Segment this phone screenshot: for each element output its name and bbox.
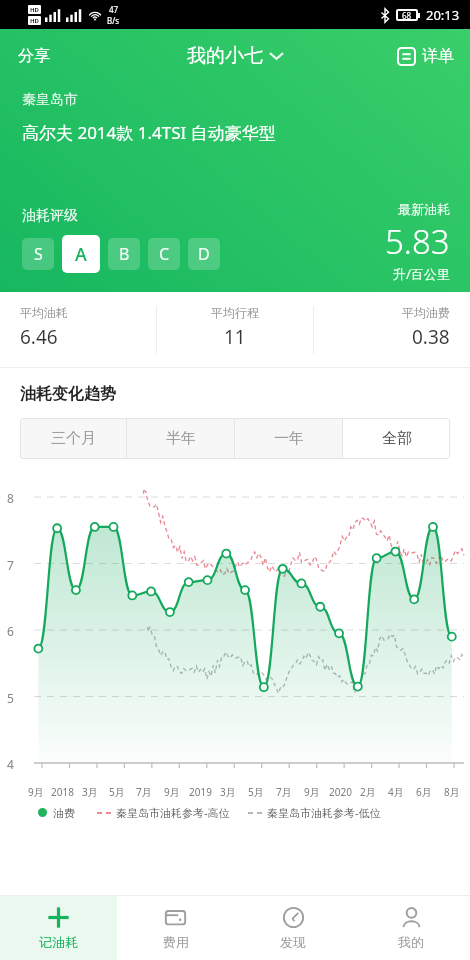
staticText: 我的小七 (187, 44, 263, 68)
staticText: 7月 (276, 785, 292, 799)
button[interactable]: 我的 (352, 896, 470, 960)
staticText: 9月 (304, 785, 320, 799)
staticText: 升/百公里 (393, 265, 450, 283)
button[interactable]: 三个月 (20, 418, 126, 459)
staticText: 发现 (280, 934, 306, 950)
staticText: 3月 (220, 785, 236, 799)
button[interactable]: 费用 (117, 896, 234, 960)
button[interactable]: 记油耗 (0, 896, 117, 960)
staticText: 平均油费 (402, 305, 450, 320)
staticText: HD (30, 17, 39, 25)
staticText: 秦皇岛市 (22, 91, 78, 109)
staticText: 平均油耗 (20, 305, 68, 320)
staticText: 9月 (164, 785, 180, 799)
button[interactable]: 半年 (127, 418, 234, 459)
staticText: 全部 (382, 429, 412, 448)
staticText: 记油耗 (39, 934, 78, 950)
button[interactable]: 我的小七 (177, 36, 293, 76)
staticText: 油费 (53, 806, 75, 820)
button[interactable]: S (22, 238, 54, 270)
staticText: C (159, 243, 170, 265)
staticText: 4 (7, 756, 14, 772)
staticText: 2020 (329, 785, 352, 799)
staticText: 分享 (18, 46, 50, 66)
staticText: 我的 (398, 934, 424, 950)
staticText: S (34, 243, 43, 265)
staticText: 高尔夫 2014款 1.4TSI 自动豪华型 (22, 121, 276, 144)
button[interactable]: 详单 (381, 38, 470, 74)
staticText: 半年 (166, 429, 196, 448)
staticText: 油耗变化趋势 (20, 384, 116, 404)
other: 费用 (164, 906, 187, 929)
staticText: 0.38 (412, 324, 450, 350)
staticText: 7月 (136, 785, 152, 799)
staticText: 详单 (422, 46, 454, 66)
staticText: 秦皇岛市油耗参考-高位 (116, 805, 230, 820)
staticText: 47 (109, 4, 119, 15)
staticText: 4月 (388, 785, 404, 799)
staticText: 11 (224, 324, 246, 350)
other: 记油耗 (47, 906, 70, 929)
button[interactable]: 平均行程 (157, 292, 313, 368)
staticText: 20:13 (426, 6, 460, 24)
staticText: 2018 (51, 785, 74, 799)
staticText: 2月 (360, 785, 376, 799)
other: 我的 (400, 906, 423, 929)
button[interactable]: 一年 (235, 418, 342, 459)
staticText: 6月 (416, 785, 432, 799)
button[interactable]: 平均油耗 (0, 292, 156, 368)
staticText: HD (30, 6, 39, 14)
staticText: B (119, 243, 130, 265)
button[interactable]: C (148, 238, 180, 270)
staticText: 7 (7, 557, 14, 573)
staticText: 6.46 (20, 324, 58, 350)
staticText: 5月 (109, 785, 125, 799)
staticText: 2019 (189, 785, 212, 799)
button[interactable]: 分享 (0, 36, 68, 76)
staticText: 3月 (82, 785, 98, 799)
staticText: 油耗评级 (22, 207, 78, 225)
staticText: 8月 (444, 785, 460, 799)
staticText: 最新油耗 (398, 201, 450, 217)
staticText: 平均行程 (211, 305, 259, 320)
staticText: 9月 (28, 785, 44, 799)
staticText: A (75, 242, 87, 267)
staticText: 三个月 (51, 429, 96, 448)
button[interactable]: A (62, 235, 100, 273)
staticText: 5月 (248, 785, 264, 799)
staticText: 一年 (274, 429, 304, 448)
other: 发现 (282, 906, 305, 929)
staticText: 5 (7, 690, 14, 706)
staticText: 8 (7, 490, 14, 506)
staticText: D (198, 243, 210, 265)
button[interactable]: D (188, 238, 220, 270)
staticText: 68 (402, 10, 412, 21)
staticText: B/s (107, 15, 120, 26)
button[interactable]: 发现 (234, 896, 352, 960)
button[interactable]: 全部 (343, 418, 450, 459)
staticText: 5.83 (385, 219, 450, 264)
button[interactable]: 平均油费 (314, 292, 470, 368)
staticText: 费用 (163, 934, 189, 950)
button[interactable]: B (108, 238, 140, 270)
staticText: 秦皇岛市油耗参考-低位 (267, 805, 381, 820)
staticText: 6 (7, 623, 14, 639)
